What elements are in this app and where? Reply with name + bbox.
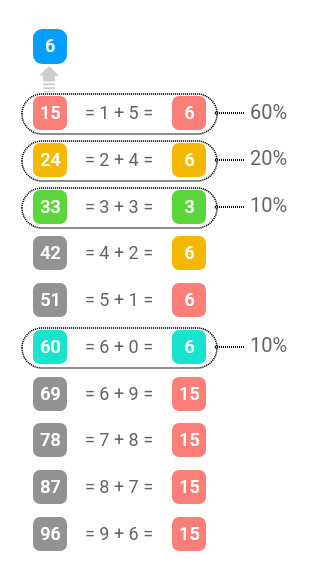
button[interactable]: 15 [172,470,206,504]
staticText: 6 [184,149,195,170]
button[interactable]: 15 [172,377,206,411]
staticText: 33 [40,196,61,217]
button[interactable]: 42 [33,236,67,270]
staticText: 15 [179,476,200,497]
button[interactable]: 6 [172,143,206,177]
button[interactable]: 15 [172,517,206,551]
button[interactable]: 6 [33,29,67,64]
staticText: = 9 + 6 = [85,523,154,544]
button[interactable]: 15 [172,423,206,457]
button[interactable]: 3 [172,190,206,224]
staticText: 60% [250,100,288,123]
staticText: = 6 + 0 = [85,336,154,357]
staticText: 6 [45,35,56,56]
button[interactable]: 6 [172,96,206,130]
staticText: 96 [40,523,61,544]
staticText: = 3 + 3 = [85,196,154,217]
button[interactable]: 6 [172,283,206,317]
staticText: = 8 + 7 = [85,476,154,497]
staticText: 78 [40,429,61,450]
staticText: 69 [40,383,61,404]
button[interactable]: 6 [172,236,206,270]
button[interactable]: 87 [33,470,67,504]
staticText: 6 [184,242,195,263]
button[interactable]: 15 [33,96,67,130]
staticText: = 2 + 4 = [85,149,154,170]
button[interactable]: 78 [33,423,67,457]
staticText: = 1 + 5 = [85,102,154,123]
staticText: 24 [40,149,61,170]
staticText: 6 [184,102,195,123]
button[interactable]: 24 [33,143,67,177]
staticText: 42 [40,242,61,263]
staticText: = 7 + 8 = [85,429,154,450]
staticText: = 5 + 1 = [85,289,154,310]
staticText: 10% [250,193,288,216]
button[interactable]: 69 [33,377,67,411]
staticText: 51 [40,289,61,310]
staticText: 15 [179,429,200,450]
button[interactable]: 96 [33,517,67,551]
other: Publish [39,66,59,92]
staticText: 3 [184,196,195,217]
button[interactable]: 60 [33,330,67,364]
staticText: 6 [184,336,195,357]
staticText: 87 [40,476,61,497]
button[interactable]: 6 [172,330,206,364]
staticText: = 4 + 2 = [85,242,154,263]
staticText: 10% [250,333,288,356]
staticText: 20% [250,146,288,169]
staticText: 15 [40,102,61,123]
staticText: 15 [179,523,200,544]
button[interactable]: 51 [33,283,67,317]
staticText: 60 [40,336,61,357]
button[interactable]: 33 [33,190,67,224]
staticText: 15 [179,383,200,404]
staticText: 6 [184,289,195,310]
staticText: = 6 + 9 = [85,383,154,404]
